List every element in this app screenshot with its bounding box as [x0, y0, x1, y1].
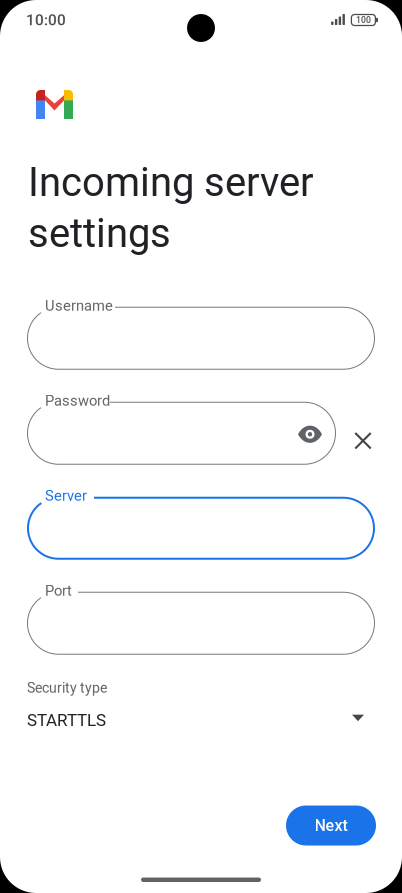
- button[interactable]: STARTTLS: [0, 705, 402, 735]
- button[interactable]: Clear password: [341, 419, 385, 463]
- staticText: settings: [28, 210, 171, 257]
- staticText: Server: [45, 487, 87, 504]
- button[interactable]: Next: [286, 805, 376, 845]
- staticText: 10:00: [26, 11, 66, 29]
- staticText: Username: [45, 297, 113, 314]
- button[interactable]: Show password: [288, 412, 332, 456]
- staticText: Incoming server: [28, 159, 314, 206]
- staticText: Next: [314, 816, 347, 835]
- staticText: Port: [45, 582, 72, 599]
- staticText: 100: [356, 15, 371, 25]
- staticText: STARTTLS: [27, 710, 106, 730]
- staticText: Password: [45, 392, 110, 409]
- staticText: Security type: [27, 680, 107, 696]
